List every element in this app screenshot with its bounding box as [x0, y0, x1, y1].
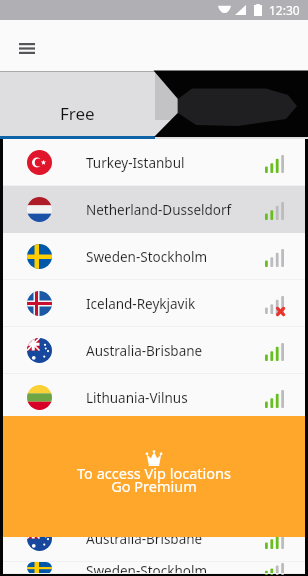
staticText: Turkey-Istanbul [86, 154, 185, 172]
staticText: Turkey-Istanbul [86, 436, 185, 454]
staticText: 12:30 [269, 2, 300, 18]
button[interactable]: Iceland-Reykjavik [3, 280, 305, 327]
button[interactable]: Netherland-Dusseldorf [3, 468, 305, 515]
staticText: Australia-Brisbane [86, 342, 203, 360]
button[interactable]: Sweden-Stockholm [3, 562, 305, 574]
button[interactable]: Sweden-Stockholm [3, 233, 305, 280]
staticText: Iceland-Reykjavik [86, 295, 196, 313]
staticText: Free [60, 102, 95, 125]
button[interactable]: Lithuania-Vilnus [3, 374, 305, 421]
button[interactable]: Australia-Brisbane [3, 515, 305, 562]
staticText: Australia-Brisbane [86, 530, 203, 548]
staticText: Lithuania-Vilnus [86, 389, 188, 407]
button[interactable]: Turkey-Istanbul [3, 139, 305, 186]
button[interactable] [155, 71, 308, 139]
button[interactable]: Australia-Brisbane [3, 327, 305, 374]
button[interactable]: To access Vip locations Go Premium [3, 416, 305, 537]
staticText: Sweden-Stockholm [86, 562, 208, 574]
button[interactable]: Open navigation menu [11, 32, 43, 64]
staticText: To access Vip locations Go Premium [77, 463, 231, 496]
staticText: Netherland-Dusseldorf [86, 201, 232, 219]
button[interactable]: Turkey-Istanbul [3, 421, 305, 468]
button[interactable]: Free [0, 71, 155, 139]
button[interactable]: Netherland-Dusseldorf [3, 186, 305, 233]
staticText: Sweden-Stockholm [86, 248, 208, 266]
staticText: Netherland-Dusseldorf [86, 483, 232, 501]
